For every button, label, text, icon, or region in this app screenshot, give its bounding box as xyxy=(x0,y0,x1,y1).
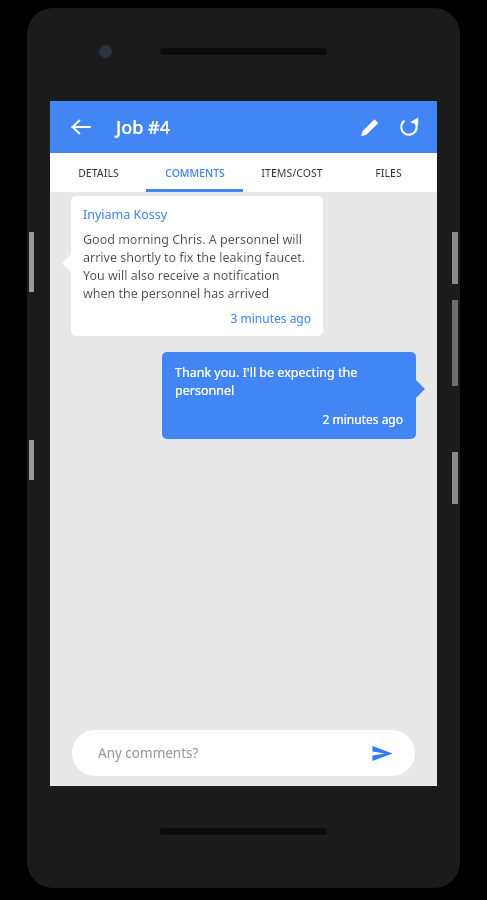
staticText: DETAILS xyxy=(78,166,119,180)
staticText: Good morning Chris. A personnel will arr… xyxy=(83,231,311,302)
button[interactable]: COMMENTS xyxy=(146,153,243,192)
staticText: 2 minutes ago xyxy=(175,411,403,427)
button[interactable]: Refresh xyxy=(389,107,429,147)
button[interactable]: ITEMS/COST xyxy=(243,153,340,192)
staticText: FILES xyxy=(375,166,402,180)
button[interactable]: Inyiama Kossy xyxy=(71,196,323,336)
button[interactable]: Edit xyxy=(349,107,389,147)
button[interactable]: Any comments? xyxy=(72,730,415,776)
staticText: Any comments? xyxy=(98,744,367,762)
button[interactable]: Thank you. I'll be expecting the personn… xyxy=(162,352,416,439)
button[interactable]: Send xyxy=(367,738,397,768)
button[interactable]: Back xyxy=(60,106,102,148)
button[interactable]: DETAILS xyxy=(50,153,146,192)
staticText: Inyiama Kossy xyxy=(83,206,168,223)
staticText: Job #4 xyxy=(116,115,170,140)
staticText: COMMENTS xyxy=(165,166,225,180)
staticText: Thank you. I'll be expecting the personn… xyxy=(175,364,403,399)
staticText: 3 minutes ago xyxy=(83,310,311,326)
staticText: ITEMS/COST xyxy=(261,166,323,180)
button[interactable]: FILES xyxy=(340,153,437,192)
